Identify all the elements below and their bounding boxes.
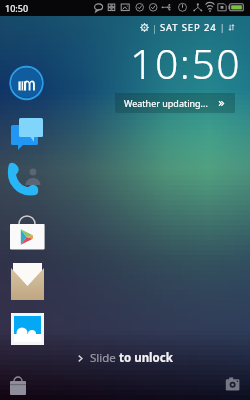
button[interactable]: Phone <box>10 166 43 199</box>
button[interactable]: Play Store <box>10 216 43 249</box>
staticText: Slide <box>90 350 119 366</box>
staticText: Weather updating... <box>124 97 208 109</box>
button[interactable]: Gallery <box>10 316 43 349</box>
staticText: | <box>220 22 225 33</box>
staticText: | <box>152 22 157 34</box>
button[interactable]: Mi account <box>10 66 43 99</box>
button[interactable]: Weather updating... <box>115 93 235 113</box>
staticText: 10:50 <box>5 2 29 14</box>
button[interactable]: Email <box>10 266 43 299</box>
button[interactable]: Messaging <box>10 116 43 149</box>
button[interactable]: Camera <box>220 371 245 396</box>
staticText: SAT SEP 24 <box>160 21 217 34</box>
staticText: to unlock <box>119 350 173 366</box>
staticText: 10:50 <box>130 35 242 91</box>
